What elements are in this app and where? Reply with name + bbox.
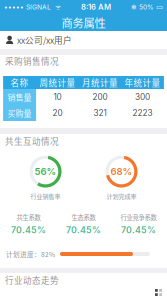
staticText: 行业竞争系数 <box>120 212 156 222</box>
staticText: 采购销售情况 <box>5 55 59 67</box>
staticText: 行业动态走势 <box>5 274 59 286</box>
staticText: 生态系数 <box>71 212 95 222</box>
staticText: 70.45% <box>66 225 101 235</box>
staticText: 销售量 <box>8 91 32 103</box>
staticText: 月统计量 <box>82 76 118 89</box>
staticText: 20 <box>52 108 62 118</box>
staticText: 买购量 <box>8 107 32 119</box>
staticText: 70.45% <box>11 225 46 235</box>
staticText: ••••• <box>4 3 24 11</box>
staticText: 200 <box>92 92 107 102</box>
staticText: 10 <box>53 92 61 102</box>
staticText: 2223 <box>133 108 153 118</box>
staticText: ᯤ <box>51 2 61 12</box>
staticText: 年统计量 <box>125 76 161 89</box>
staticText: 70.45% <box>121 225 156 235</box>
staticText: 名称 <box>11 76 29 89</box>
staticText: 68% <box>110 166 132 177</box>
staticText: 321 <box>93 108 106 118</box>
staticText: 8:16 AM <box>81 2 111 12</box>
staticText: 周统计量 <box>39 76 75 89</box>
staticText: 300 <box>135 92 150 102</box>
staticText: 商务属性 <box>61 14 105 31</box>
staticText: 行业销售率 <box>30 192 60 200</box>
staticText: 共生系数 <box>16 212 40 222</box>
staticText: xx公司/xx用户 <box>17 34 72 46</box>
staticText: 共生互动情况 <box>5 135 59 147</box>
staticText: 计划完成率 <box>106 192 136 200</box>
staticText: 计划进度：82% <box>6 249 55 259</box>
staticText: ✻ 50% <box>131 3 154 11</box>
staticText: SIGNAL <box>24 3 51 11</box>
staticText: 56% <box>34 166 56 177</box>
staticText: ▭ <box>154 3 163 11</box>
button[interactable]: xx公司/xx用户 <box>0 31 167 49</box>
